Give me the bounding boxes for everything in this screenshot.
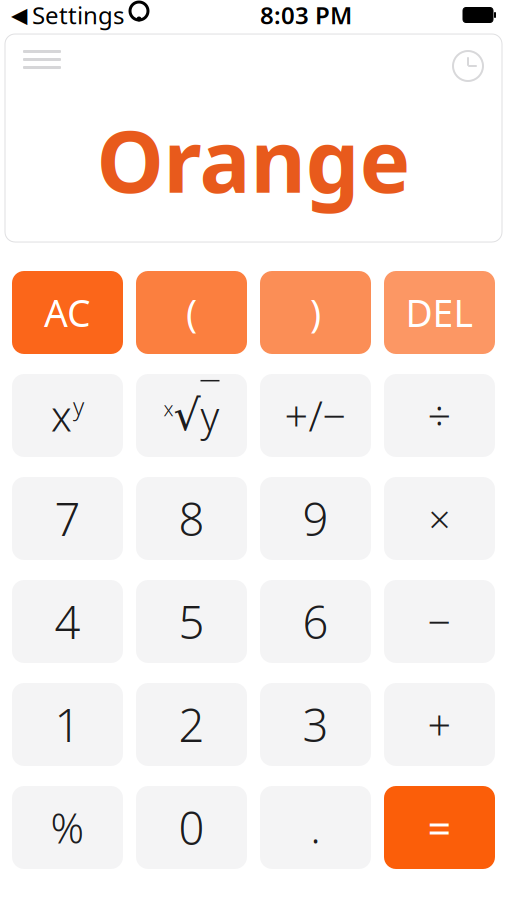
button[interactable]: 3 bbox=[260, 683, 371, 766]
button[interactable]: +/− bbox=[260, 374, 371, 457]
button[interactable]: Menu bbox=[15, 42, 69, 77]
staticText: 5 bbox=[178, 591, 204, 652]
staticText: 2 bbox=[178, 694, 204, 755]
staticText: 0 bbox=[178, 797, 204, 858]
staticText: Orange bbox=[96, 103, 410, 216]
staticText: Settings bbox=[32, 0, 124, 31]
button[interactable]: × bbox=[384, 477, 495, 560]
staticText: 8:03 PM bbox=[260, 0, 352, 31]
button[interactable]: DEL bbox=[384, 271, 495, 354]
button[interactable]: 0 bbox=[136, 786, 247, 869]
staticText: AC bbox=[44, 288, 91, 337]
button[interactable]: 7 bbox=[12, 477, 123, 560]
staticText: 7 bbox=[54, 488, 80, 549]
staticText: = bbox=[427, 800, 451, 855]
button[interactable]: 4 bbox=[12, 580, 123, 663]
staticText: x bbox=[51, 388, 72, 443]
staticText: ◀ bbox=[11, 3, 27, 27]
staticText: y bbox=[73, 390, 84, 422]
button[interactable]: 2 bbox=[136, 683, 247, 766]
button[interactable]: x root of y bbox=[136, 374, 247, 457]
staticText: √ bbox=[173, 391, 200, 440]
button[interactable]: = bbox=[384, 786, 495, 869]
staticText: ÷ bbox=[427, 388, 451, 443]
button[interactable]: History bbox=[444, 42, 492, 90]
button[interactable]: 5 bbox=[136, 580, 247, 663]
button[interactable]: . bbox=[260, 786, 371, 869]
button[interactable]: ÷ bbox=[384, 374, 495, 457]
button[interactable]: % bbox=[12, 786, 123, 869]
button[interactable]: 9 bbox=[260, 477, 371, 560]
button[interactable]: ( bbox=[136, 271, 247, 354]
staticText: − bbox=[427, 594, 451, 649]
staticText: ( bbox=[186, 288, 197, 337]
button[interactable]: + bbox=[384, 683, 495, 766]
staticText: DEL bbox=[405, 288, 473, 337]
button[interactable]: ) bbox=[260, 271, 371, 354]
button[interactable]: 1 bbox=[12, 683, 123, 766]
staticText: . bbox=[310, 800, 320, 855]
staticText: ) bbox=[310, 288, 321, 337]
staticText: y bbox=[200, 389, 219, 442]
button[interactable]: 8 bbox=[136, 477, 247, 560]
staticText: % bbox=[50, 800, 84, 855]
staticText: + bbox=[427, 697, 451, 752]
button[interactable]: x to the power of y bbox=[12, 374, 123, 457]
staticText: 3 bbox=[302, 694, 328, 755]
staticText: x bbox=[163, 395, 173, 422]
button[interactable]: − bbox=[384, 580, 495, 663]
staticText: 6 bbox=[302, 591, 328, 652]
staticText: 8 bbox=[178, 488, 204, 549]
staticText: 1 bbox=[54, 694, 80, 755]
staticText: 9 bbox=[302, 488, 328, 549]
button[interactable]: 6 bbox=[260, 580, 371, 663]
staticText: 4 bbox=[54, 591, 80, 652]
staticText: × bbox=[428, 493, 450, 544]
staticText: +/− bbox=[284, 388, 346, 443]
button[interactable]: AC bbox=[12, 271, 123, 354]
